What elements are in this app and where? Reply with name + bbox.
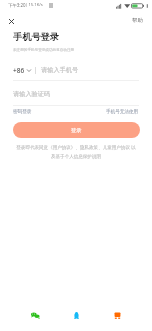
staticText: +86	[13, 66, 25, 75]
button[interactable]: 帮助	[132, 17, 143, 24]
button[interactable]: 请输入验证码	[13, 90, 51, 98]
button[interactable]: Other login	[109, 307, 125, 323]
staticText: | 15.1K/s	[25, 2, 43, 8]
button[interactable]: WeChat login	[27, 307, 43, 323]
button[interactable]: 登录	[13, 122, 140, 138]
staticText: 下午3:20	[8, 2, 26, 8]
button[interactable]: 手机号无法使用	[106, 109, 139, 115]
staticText: 手机号登录	[13, 31, 59, 43]
button[interactable]: QQ login	[68, 307, 84, 323]
staticText: 请输入手机号	[41, 66, 79, 74]
button[interactable]: 密码登录	[13, 109, 32, 115]
button[interactable]: Close	[5, 15, 17, 27]
staticText: 登录	[71, 127, 82, 134]
staticText: 未注册的手机号登录成功后将自动注册	[13, 48, 75, 53]
staticText: 登录即代表同意《用户协议》、隐私政策、儿童用户协议 以 及基于个人信息保护说明	[0, 144, 152, 160]
button[interactable]: Country code +86	[13, 66, 31, 75]
